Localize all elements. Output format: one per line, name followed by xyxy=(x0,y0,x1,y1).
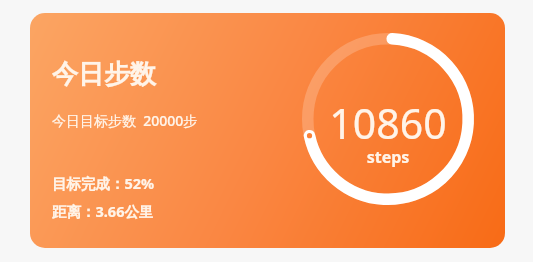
button[interactable]: Step progress 52 percent xyxy=(302,33,474,205)
button[interactable]: 今日步数 xyxy=(30,13,505,248)
staticText: 10860 xyxy=(314,95,462,143)
staticText: 目标完成：52% xyxy=(52,173,155,193)
staticText: 今日目标步数 20000步 xyxy=(52,111,198,130)
staticText: steps xyxy=(314,146,462,170)
staticText: 今日步数 xyxy=(52,58,156,91)
staticText: 距离：3.66公里 xyxy=(52,201,154,221)
